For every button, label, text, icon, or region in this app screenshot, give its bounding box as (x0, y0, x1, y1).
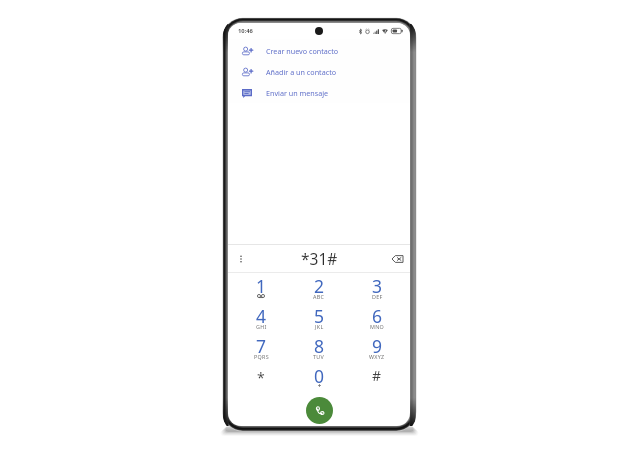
staticText: TUV (313, 353, 325, 360)
staticText: *31# (301, 248, 338, 269)
staticText: WXYZ (369, 353, 385, 360)
staticText: 2 (314, 274, 325, 298)
button[interactable]: Backspace (390, 252, 404, 266)
staticText: 5 (314, 304, 325, 328)
button[interactable]: Call (306, 397, 333, 424)
staticText: GHI (256, 323, 267, 330)
staticText: MNO (370, 323, 385, 330)
staticText: 9 (372, 334, 383, 358)
staticText: 6 (372, 304, 383, 328)
button[interactable]: Añadir a un contacto (228, 61, 410, 82)
staticText: Añadir a un contacto (266, 67, 337, 77)
button[interactable]: 2 (290, 274, 348, 304)
staticText: # (372, 366, 382, 385)
staticText: Crear nuevo contacto (266, 46, 339, 56)
button[interactable]: 1 (232, 274, 290, 304)
staticText: * (257, 368, 265, 387)
staticText: DEF (372, 293, 383, 300)
button[interactable]: # (348, 364, 406, 394)
button[interactable]: 8 (290, 334, 348, 364)
button[interactable]: 0 (290, 364, 348, 394)
staticText: JKL (315, 323, 324, 330)
button[interactable]: 7 (232, 334, 290, 364)
staticText: ABC (313, 293, 325, 300)
button[interactable]: More options (234, 252, 248, 266)
staticText: 7 (256, 334, 267, 358)
staticText: 3 (372, 274, 383, 298)
button[interactable]: 9 (348, 334, 406, 364)
staticText: 0 (314, 364, 325, 388)
button[interactable]: * (232, 364, 290, 394)
button[interactable]: 6 (348, 304, 406, 334)
staticText: PQRS (254, 353, 269, 360)
staticText: 8 (314, 334, 325, 358)
button[interactable]: 3 (348, 274, 406, 304)
staticText: 1 (256, 274, 267, 298)
staticText: 4 (256, 304, 267, 328)
button[interactable]: 5 (290, 304, 348, 334)
button[interactable]: 4 (232, 304, 290, 334)
button[interactable]: Enviar un mensaje (228, 82, 410, 103)
staticText: 10:46 (238, 27, 253, 35)
button[interactable]: Crear nuevo contacto (228, 40, 410, 61)
staticText: Enviar un mensaje (266, 88, 329, 98)
